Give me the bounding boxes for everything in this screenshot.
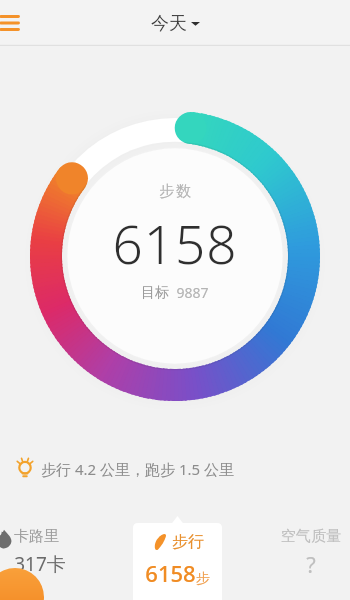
staticText: ?: [306, 549, 316, 579]
staticText: 317卡: [14, 551, 66, 577]
staticText: 空气质量: [281, 527, 341, 546]
staticText: 6158: [112, 207, 238, 279]
button[interactable]: 步行: [133, 516, 222, 600]
button[interactable]: Add activity: [0, 568, 44, 600]
staticText: 卡路里: [14, 527, 59, 546]
staticText: 6158: [145, 558, 196, 588]
staticText: 今天: [151, 12, 187, 35]
staticText: 9887: [176, 283, 209, 302]
button[interactable]: 今天: [151, 12, 200, 35]
staticText: 目标: [141, 284, 169, 302]
button[interactable]: 空气质量: [281, 527, 341, 579]
staticText: 步行: [172, 532, 204, 552]
button[interactable]: 步行 4.2 公里，跑步 1.5 公里: [14, 458, 234, 480]
staticText: 步行 4.2 公里，跑步 1.5 公里: [41, 459, 234, 479]
staticText: 步数: [158, 182, 192, 201]
button[interactable]: Menu: [0, 6, 28, 40]
staticText: 步: [196, 570, 210, 588]
button[interactable]: 卡路里: [0, 527, 114, 577]
